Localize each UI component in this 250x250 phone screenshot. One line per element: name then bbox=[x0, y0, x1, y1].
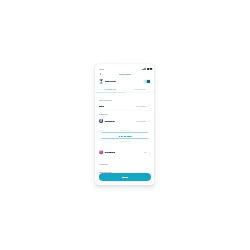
staticText: Time limits bbox=[119, 72, 131, 75]
staticText: Facebook bbox=[105, 119, 115, 122]
staticText: Instagram bbox=[105, 151, 115, 154]
button[interactable]: Instagram bbox=[99, 149, 150, 155]
staticText: Total bbox=[99, 104, 104, 107]
staticText: Entertainment bbox=[99, 171, 112, 173]
button[interactable]: Weekends bbox=[125, 87, 154, 92]
staticText: Time limits bbox=[105, 80, 116, 83]
button[interactable]: f bbox=[99, 118, 150, 124]
staticText: 2 hr 30 min bbox=[119, 134, 132, 137]
staticText: Time limits bbox=[119, 72, 131, 75]
button[interactable]: Time limits bbox=[99, 78, 150, 85]
staticText: Instagram bbox=[105, 151, 115, 154]
staticText: 2 hr 30 min bbox=[136, 104, 147, 107]
button[interactable]: Toggle time limits bbox=[143, 79, 151, 83]
staticText: Platforms bbox=[99, 113, 108, 115]
staticText: Total bbox=[99, 104, 104, 107]
staticText: Time limits bbox=[105, 80, 116, 83]
staticText: 2 hr 30 min bbox=[119, 134, 132, 137]
staticText: Total bbox=[99, 104, 104, 107]
staticText: Instagram bbox=[105, 151, 115, 154]
staticText: Off bbox=[144, 151, 147, 154]
button[interactable]: Total bbox=[99, 103, 150, 109]
staticText: Time limits bbox=[105, 80, 116, 83]
button[interactable]: Weekdays bbox=[95, 87, 125, 92]
staticText: f bbox=[100, 119, 102, 123]
button[interactable]: Save bbox=[99, 173, 151, 181]
staticText: Daily time limit bbox=[99, 99, 112, 101]
staticText: Facebook bbox=[105, 119, 115, 122]
staticText: 3 hr 00 min bbox=[120, 140, 130, 142]
staticText: Categories bbox=[99, 163, 109, 166]
staticText: Weekdays bbox=[104, 87, 116, 90]
staticText: 2 hr 30 min bbox=[136, 119, 147, 122]
staticText: Save bbox=[122, 175, 128, 178]
button[interactable]: Back bbox=[98, 72, 102, 76]
staticText: Facebook bbox=[105, 119, 115, 122]
staticText: 2 hr 00 min bbox=[120, 129, 130, 131]
staticText: 9:41 bbox=[99, 67, 104, 71]
staticText: Save bbox=[122, 175, 128, 178]
staticText: Weekends bbox=[134, 87, 146, 90]
